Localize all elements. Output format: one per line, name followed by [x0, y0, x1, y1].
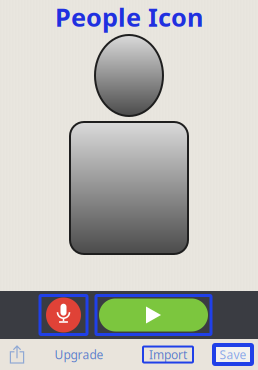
staticText: Save [219, 346, 246, 362]
staticText: Upgrade [54, 346, 103, 362]
button[interactable]: Share [3, 339, 31, 370]
button[interactable]: Record [40, 295, 87, 334]
button[interactable]: Play [96, 295, 211, 334]
button[interactable]: Save [212, 339, 254, 370]
button[interactable]: Import [141, 339, 195, 370]
staticText: Import [149, 346, 187, 362]
staticText: People Icon [55, 0, 203, 34]
button[interactable]: Upgrade [53, 339, 105, 370]
